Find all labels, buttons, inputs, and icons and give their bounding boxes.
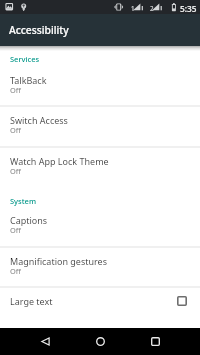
button[interactable] — [0, 106, 200, 146]
staticText: 1 — [131, 4, 135, 13]
staticText: Off — [10, 225, 21, 235]
staticText: Accessibility — [9, 23, 69, 37]
staticText: 5:35 — [180, 3, 197, 14]
staticText: 2 — [150, 4, 154, 13]
staticText: Off — [10, 85, 21, 95]
staticText: Magnification gestures — [10, 255, 107, 267]
staticText: Off — [10, 266, 21, 276]
staticText: Off — [10, 166, 21, 176]
button[interactable]: Back — [26, 328, 64, 355]
staticText: TalkBack — [10, 74, 47, 86]
staticText: Services — [10, 54, 40, 64]
staticText: Large text — [10, 295, 53, 307]
staticText: Captions — [10, 214, 48, 226]
button[interactable] — [0, 147, 200, 187]
button[interactable]: Home — [81, 328, 119, 355]
button[interactable] — [0, 210, 200, 246]
staticText: Off — [10, 125, 21, 135]
staticText: System — [10, 196, 37, 206]
button[interactable] — [0, 68, 200, 105]
staticText: Watch App Lock Theme — [10, 155, 109, 167]
button[interactable] — [0, 287, 200, 327]
staticText: Switch Access — [10, 114, 68, 126]
button[interactable] — [0, 247, 200, 286]
button[interactable]: Recents — [136, 328, 174, 355]
